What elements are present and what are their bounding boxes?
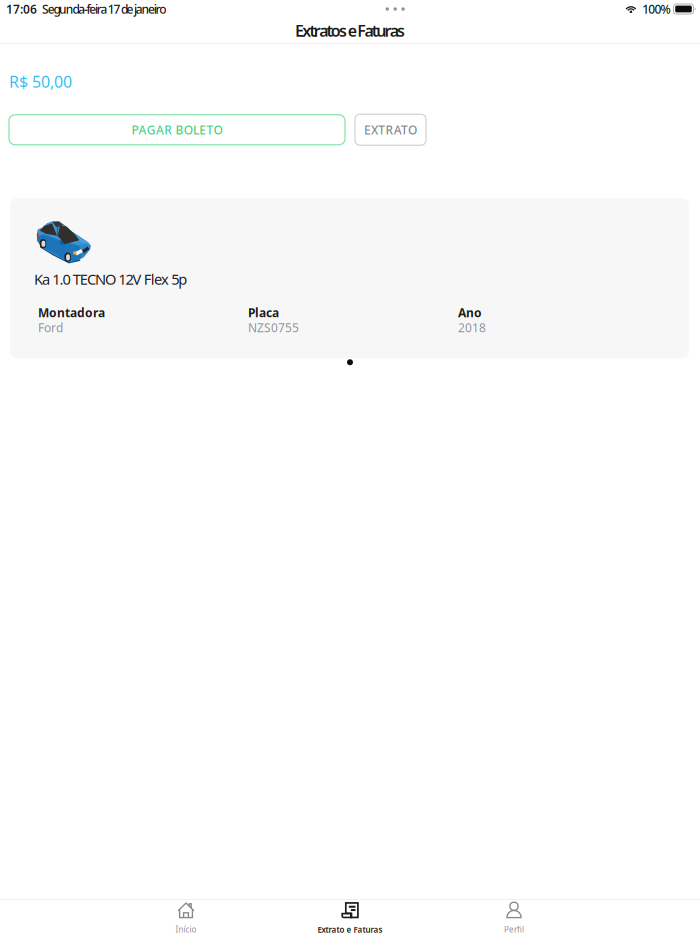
staticText: PAGAR BOLETO bbox=[131, 122, 223, 138]
button[interactable]: Início bbox=[104, 900, 268, 934]
staticText: Extrato e Faturas bbox=[317, 924, 382, 934]
button[interactable]: Extratos e Faturas bbox=[285, 18, 415, 43]
button[interactable]: EXTRATO bbox=[345, 114, 426, 145]
staticText: Ano bbox=[458, 305, 482, 321]
staticText: Montadora bbox=[38, 305, 105, 321]
staticText: 2018 bbox=[458, 320, 486, 336]
staticText: Perfil bbox=[504, 924, 524, 934]
button[interactable]: Perfil bbox=[432, 900, 596, 934]
staticText: NZS0755 bbox=[248, 320, 299, 336]
staticText: Segunda-feira 17 de janeiro bbox=[42, 1, 166, 17]
staticText: EXTRATO bbox=[364, 122, 417, 138]
staticText: Ka 1.0 TECNO 12V Flex 5p bbox=[34, 269, 187, 289]
button[interactable]: PAGAR BOLETO bbox=[9, 115, 345, 145]
staticText: Extratos e Faturas bbox=[295, 20, 405, 41]
staticText: R$ 50,00 bbox=[9, 71, 72, 92]
staticText: 17:06 bbox=[6, 1, 37, 17]
staticText: Início bbox=[175, 924, 196, 934]
button[interactable]: Extrato e Faturas bbox=[268, 900, 432, 934]
staticText: Ford bbox=[38, 320, 63, 336]
staticText: Placa bbox=[248, 305, 279, 321]
staticText: 100% bbox=[642, 1, 670, 17]
